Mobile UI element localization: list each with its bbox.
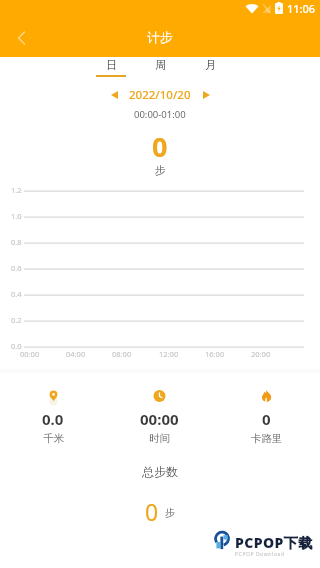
button[interactable]: 0.0 [0, 390, 106, 445]
button[interactable]: 月 [193, 58, 227, 77]
staticText: 0 [145, 496, 159, 527]
staticText: 时间 [149, 432, 170, 445]
staticText: 11:06 [287, 1, 316, 15]
staticText: 月 [205, 58, 216, 72]
staticText: PCPOP Download [235, 551, 285, 558]
staticText: 周 [155, 58, 166, 72]
staticText: 0.6 [11, 263, 22, 273]
staticText: 00:00-01:00 [134, 108, 186, 121]
button[interactable]: 日 [94, 58, 128, 77]
staticText: 08:00 [112, 349, 132, 359]
staticText: 16:00 [205, 349, 225, 359]
staticText: 计步 [147, 29, 173, 45]
staticText: 卡路里 [251, 432, 283, 445]
staticText: 步 [165, 506, 175, 519]
staticText: 0.0 [11, 341, 22, 351]
button[interactable]: 00:00 [106, 390, 213, 445]
button[interactable]: Previous day [105, 87, 123, 103]
staticText: 04:00 [66, 349, 86, 359]
staticText: 00:00 [20, 349, 40, 359]
staticText: 0 [262, 409, 271, 429]
staticText: 2022/10/20 [129, 87, 191, 103]
button[interactable]: 周 [143, 58, 177, 77]
button[interactable]: Next day [197, 87, 215, 103]
staticText: 00:00 [140, 409, 179, 429]
button[interactable]: 0 [213, 390, 320, 445]
staticText: 步 [155, 163, 166, 177]
staticText: 0.8 [11, 237, 22, 247]
button[interactable]: Back [8, 25, 34, 51]
staticText: 0.0 [42, 409, 64, 429]
staticText: 1.2 [11, 185, 22, 195]
staticText: 1.0 [11, 211, 22, 221]
staticText: 千米 [43, 432, 64, 445]
staticText: 总步数 [142, 464, 178, 479]
staticText: 20:00 [251, 349, 271, 359]
staticText: 0 [152, 128, 168, 165]
staticText: 0.4 [11, 289, 22, 299]
staticText: 0.2 [11, 315, 22, 325]
staticText: 日 [106, 58, 117, 72]
staticText: 12:00 [159, 349, 179, 359]
staticText: PCPOP下载 [235, 533, 313, 552]
